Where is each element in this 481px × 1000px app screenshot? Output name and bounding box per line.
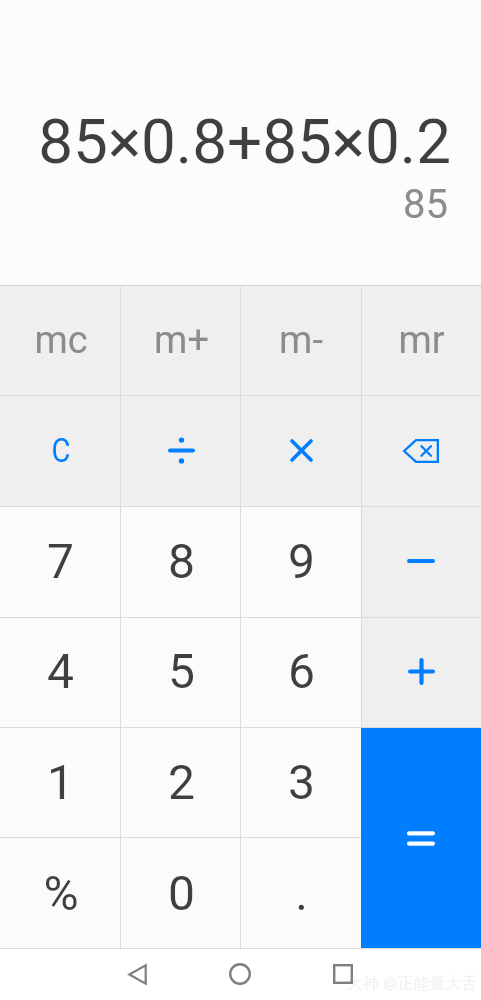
staticText: 9	[288, 533, 315, 589]
staticText: m-	[279, 318, 323, 363]
staticText: 0	[168, 865, 195, 921]
staticText: 8	[168, 533, 195, 589]
button[interactable]: 9	[241, 506, 361, 616]
button[interactable]: .	[241, 837, 361, 948]
staticText: 7	[47, 533, 74, 589]
staticText: 2	[168, 754, 195, 810]
staticText: %	[43, 865, 79, 921]
button[interactable]: Backspace	[361, 395, 481, 506]
button[interactable]: Equals	[361, 727, 481, 948]
button[interactable]: Multiply	[241, 395, 361, 506]
staticText: 4	[47, 643, 74, 699]
button[interactable]: 1	[0, 726, 121, 837]
button[interactable]: 3	[241, 726, 361, 837]
staticText: C	[51, 431, 71, 470]
staticText: 85×0.8+85×0.2	[38, 105, 451, 178]
button[interactable]: 5	[121, 616, 241, 726]
button[interactable]: mc	[0, 285, 121, 395]
staticText: 6	[288, 643, 315, 699]
staticText: 1	[47, 754, 74, 810]
staticText: 85	[403, 181, 448, 228]
staticText: .	[295, 865, 308, 921]
staticText: 3	[288, 754, 315, 810]
button[interactable]: 2	[121, 726, 241, 837]
button[interactable]: Minus	[361, 506, 481, 616]
button[interactable]: Recents	[317, 948, 369, 1000]
button[interactable]: Divide	[121, 395, 241, 506]
button[interactable]: mr	[361, 285, 481, 395]
button[interactable]: m+	[121, 285, 241, 395]
staticText: m+	[154, 318, 209, 363]
staticText: 大神 @正能量大舌	[347, 972, 478, 994]
staticText: mc	[34, 318, 88, 363]
button[interactable]: Home	[214, 948, 266, 1000]
staticText: mr	[398, 318, 445, 363]
button[interactable]: C	[0, 395, 121, 506]
button[interactable]: Plus	[361, 616, 481, 727]
button[interactable]: Back	[111, 948, 163, 1000]
button[interactable]: 6	[241, 616, 361, 726]
button[interactable]: 4	[0, 616, 121, 726]
staticText: 5	[168, 643, 195, 699]
button[interactable]: m-	[241, 285, 361, 395]
button[interactable]: %	[0, 837, 121, 948]
button[interactable]: 0	[121, 837, 241, 948]
button[interactable]: 7	[0, 506, 121, 616]
button[interactable]: 8	[121, 506, 241, 616]
